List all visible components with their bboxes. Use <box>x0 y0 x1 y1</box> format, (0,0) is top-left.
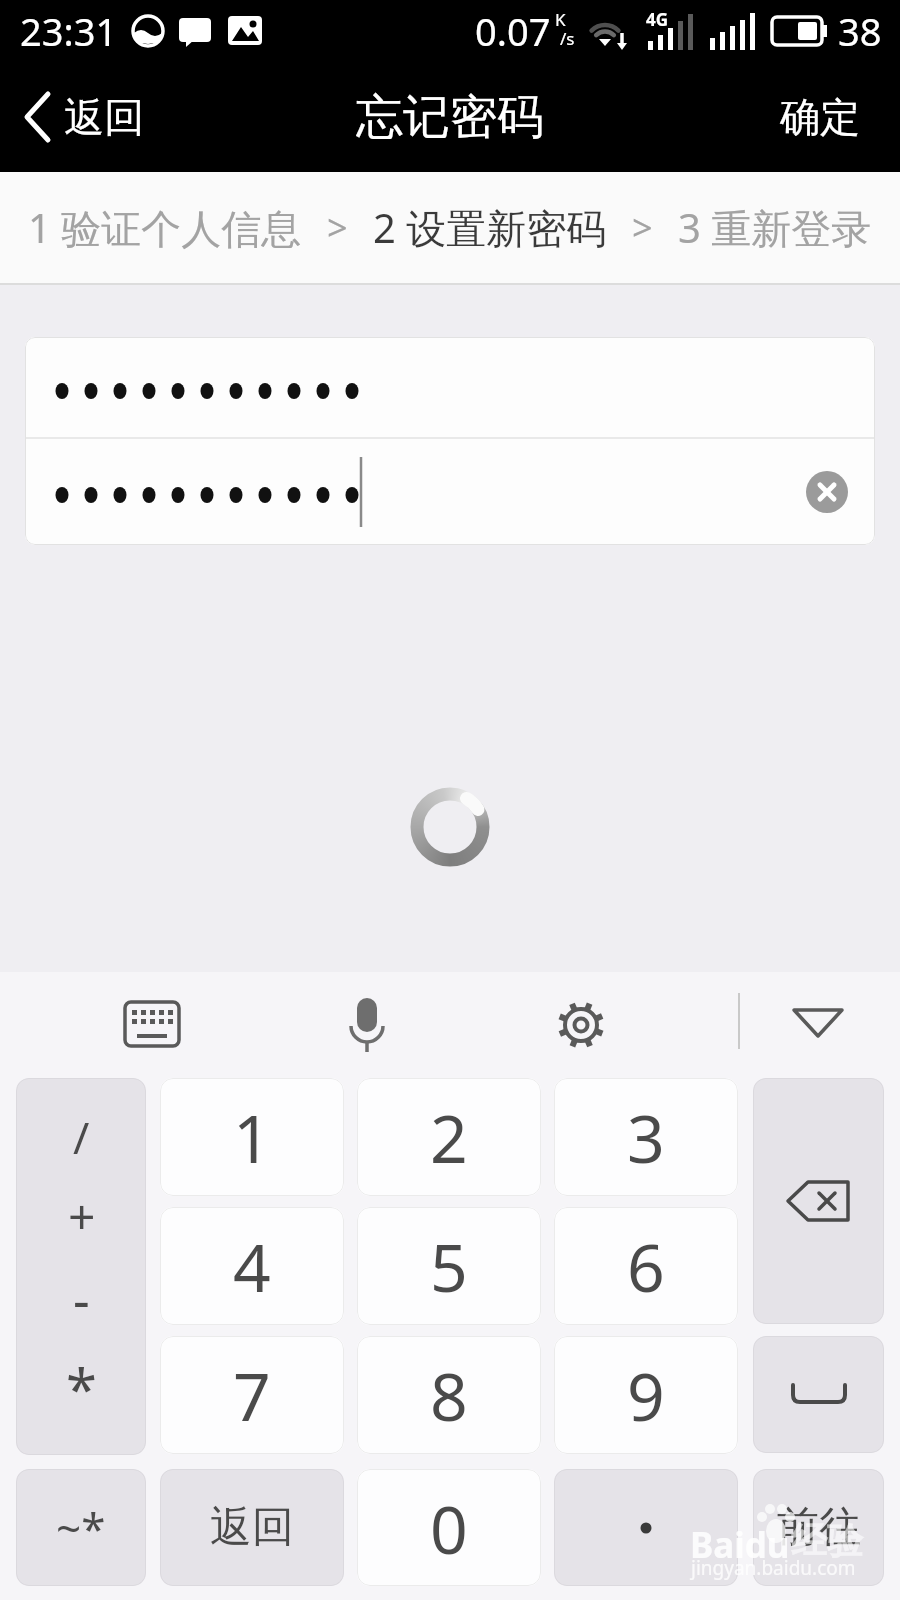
button[interactable]: 4 <box>160 1207 344 1325</box>
staticText: 0.07 <box>475 5 551 57</box>
staticText: 确定 <box>780 92 860 142</box>
staticText: 经验 <box>791 1518 863 1563</box>
button[interactable]: 0 <box>357 1469 541 1586</box>
staticText: + <box>68 1183 96 1248</box>
staticText: 返回 <box>210 1501 294 1554</box>
staticText: * <box>66 1350 97 1426</box>
staticText: - <box>73 1263 90 1334</box>
button[interactable] <box>110 1000 194 1052</box>
button[interactable]: 返回 <box>24 92 144 142</box>
button[interactable] <box>340 996 394 1058</box>
staticText: 1 <box>233 1092 271 1182</box>
staticText: > <box>327 203 348 252</box>
staticText: K <box>555 8 566 31</box>
staticText: jingyan.baidu.com <box>691 1555 856 1581</box>
staticText: 6 <box>627 1221 665 1311</box>
staticText: /s <box>560 27 575 50</box>
staticText: > <box>632 203 653 252</box>
button[interactable]: 返回 <box>160 1469 344 1586</box>
button[interactable]: 确定 <box>780 92 860 142</box>
button[interactable]: 8 <box>357 1336 541 1454</box>
staticText: 4G <box>646 8 669 31</box>
staticText: / <box>73 1107 90 1167</box>
button[interactable]: / <box>16 1078 146 1455</box>
button[interactable]: 5 <box>357 1207 541 1325</box>
button[interactable]: ~* <box>16 1469 146 1586</box>
staticText: 忘记密码 <box>356 88 544 147</box>
button[interactable]: 9 <box>554 1336 738 1454</box>
button[interactable] <box>554 1469 738 1586</box>
staticText: 2 <box>430 1092 468 1182</box>
staticText: 0 <box>430 1483 468 1573</box>
staticText: 5 <box>430 1221 468 1311</box>
staticText: 返回 <box>64 92 144 142</box>
button[interactable] <box>753 1078 884 1324</box>
button[interactable]: 2 <box>357 1078 541 1196</box>
staticText: 4 <box>233 1221 271 1311</box>
staticText: 1 验证个人信息 <box>28 200 302 255</box>
staticText: 23:31 <box>20 5 118 57</box>
button[interactable] <box>753 1336 884 1453</box>
staticText: 38 <box>838 5 882 57</box>
staticText: 3 重新登录 <box>678 200 872 255</box>
button[interactable]: 前往 <box>753 1469 884 1586</box>
button[interactable]: 1 <box>160 1078 344 1196</box>
button[interactable] <box>25 337 875 437</box>
staticText: 3 <box>627 1092 665 1182</box>
staticText: ~* <box>56 1498 106 1558</box>
button[interactable]: 7 <box>160 1336 344 1454</box>
staticText: 2 设置新密码 <box>373 200 607 255</box>
staticText: 前往 <box>777 1501 861 1554</box>
staticText: Baidu <box>690 1521 790 1569</box>
staticText: 9 <box>627 1350 665 1440</box>
staticText: 7 <box>233 1350 271 1440</box>
button[interactable]: 6 <box>554 1207 738 1325</box>
button[interactable]: 3 <box>554 1078 738 1196</box>
button[interactable] <box>790 1008 846 1042</box>
staticText: 8 <box>430 1350 468 1440</box>
button[interactable] <box>550 996 612 1058</box>
button[interactable] <box>25 439 875 545</box>
